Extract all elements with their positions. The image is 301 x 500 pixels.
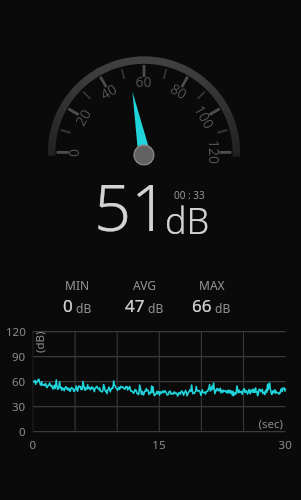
button[interactable]: MIN: [44, 277, 111, 317]
staticText: AVG: [133, 277, 157, 293]
staticText: 47: [125, 294, 145, 317]
staticText: MAX: [199, 277, 225, 293]
button[interactable]: Current level 51 decibels, elapsed 00:33: [90, 180, 218, 238]
staticText: dB: [76, 300, 92, 316]
button[interactable]: AVG: [111, 277, 178, 317]
button[interactable]: Sound level history chart: [6, 325, 295, 447]
staticText: 0: [63, 294, 73, 317]
staticText: dB: [148, 300, 164, 316]
button[interactable]: MAX: [178, 277, 245, 317]
staticText: 51: [94, 162, 169, 251]
button[interactable]: Sound level gauge, start or stop measuri…: [44, 52, 244, 164]
staticText: 00 : 33: [174, 188, 205, 202]
staticText: dB: [215, 300, 231, 316]
staticText: 66: [192, 294, 212, 317]
staticText: MIN: [65, 277, 90, 293]
staticText: dB: [165, 196, 210, 245]
